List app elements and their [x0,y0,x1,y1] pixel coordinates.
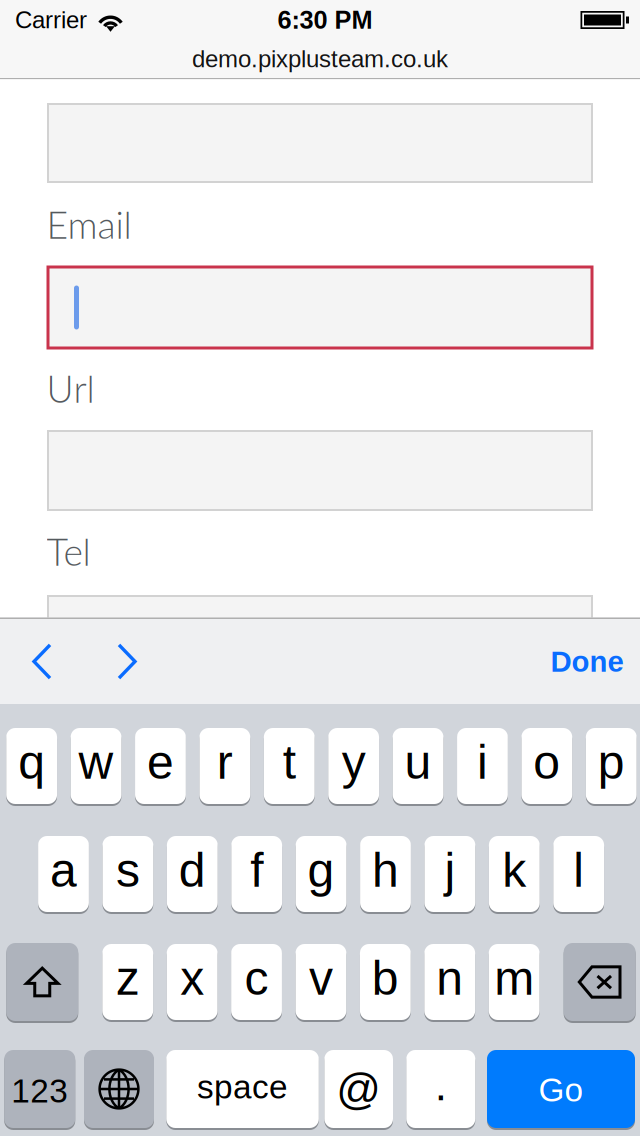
button[interactable]: n [424,943,475,1021]
staticText: b [372,951,399,1005]
staticText: Carrier [15,7,87,33]
staticText: o [533,735,560,789]
button[interactable]: f [231,835,282,913]
staticText: 123 [11,1072,68,1110]
button[interactable]: o [521,727,572,805]
button[interactable]: . [406,1049,475,1129]
button[interactable] [48,267,592,348]
staticText: t [283,735,296,789]
button[interactable]: c [231,943,282,1021]
button[interactable]: g [296,835,346,913]
button[interactable]: Shift [6,942,78,1022]
staticText: n [436,951,463,1005]
button[interactable]: Switch keyboard [84,1049,154,1129]
button[interactable]: b [360,943,411,1021]
button[interactable]: w [71,727,121,805]
staticText: @ [336,1064,381,1114]
button[interactable]: u [393,727,443,805]
staticText: j [444,843,455,897]
button[interactable]: i [457,727,508,805]
staticText: Go [538,1071,583,1109]
staticText: e [147,735,174,789]
button[interactable]: Next field [84,619,170,704]
staticText: r [217,735,233,789]
button[interactable]: Delete [564,942,636,1022]
staticText: g [308,843,335,897]
button[interactable]: t [264,727,315,805]
button[interactable]: r [199,727,250,805]
staticText: m [494,951,534,1005]
staticText: h [372,843,399,897]
staticText: Email [46,202,131,247]
button[interactable]: y [328,727,379,805]
button[interactable] [48,104,592,182]
button[interactable]: Done [535,619,639,704]
staticText: x [180,951,204,1005]
staticText: Done [550,645,623,678]
button[interactable]: Go [487,1049,635,1129]
staticText: 6:30 PM [277,6,372,34]
button[interactable]: k [489,835,540,913]
staticText: d [179,843,206,897]
button[interactable]: h [360,835,411,913]
staticText: Url [46,366,94,411]
button[interactable] [48,431,592,510]
button[interactable]: @ [324,1049,393,1129]
staticText: s [116,843,140,897]
button[interactable]: 123 [4,1049,75,1129]
staticText: y [342,735,366,789]
button[interactable]: Previous field [0,619,84,704]
staticText: k [502,843,526,897]
button[interactable]: q [6,727,57,805]
staticText: i [477,735,488,789]
button[interactable]: e [135,727,186,805]
staticText: l [573,843,584,897]
staticText: demo.pixplusteam.co.uk [192,46,448,72]
button[interactable]: s [102,835,153,913]
staticText: v [309,951,333,1005]
button[interactable]: v [295,943,346,1021]
staticText: space [197,1068,288,1106]
staticText: p [598,735,625,789]
button[interactable]: space [166,1049,319,1129]
button[interactable]: z [102,943,153,1021]
button[interactable]: d [167,835,218,913]
button[interactable]: x [167,943,218,1021]
staticText: q [18,735,45,789]
button[interactable]: m [489,943,539,1021]
staticText: f [250,843,263,897]
button[interactable]: a [38,835,89,913]
staticText: . [435,1060,447,1110]
staticText: u [404,735,431,789]
staticText: Tel [46,529,90,574]
staticText: z [116,951,140,1005]
staticText: w [78,735,113,789]
button[interactable]: j [424,835,475,913]
button[interactable] [48,596,592,675]
staticText: c [244,951,268,1005]
staticText: a [50,843,77,897]
button[interactable]: p [586,727,637,805]
button[interactable]: l [553,835,604,913]
